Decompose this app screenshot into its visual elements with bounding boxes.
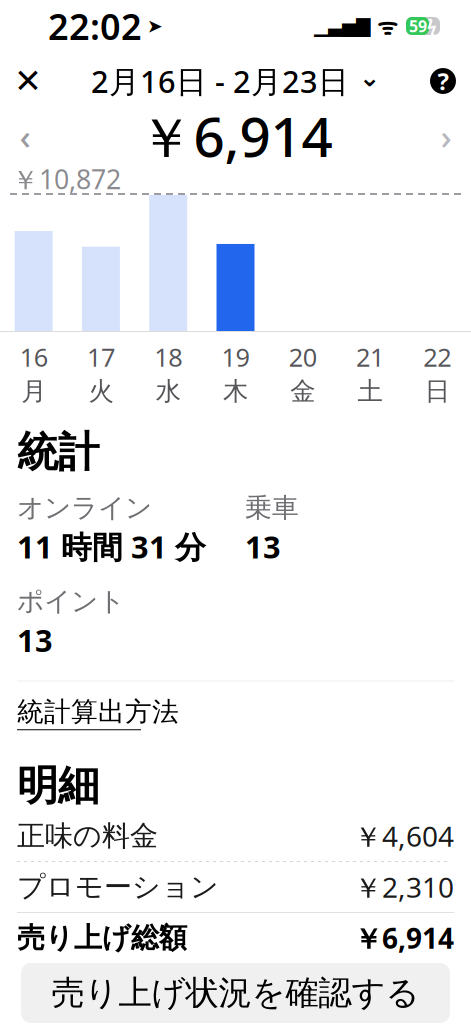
staticText: ポイント — [17, 585, 125, 618]
staticText: 統計算出方法 — [17, 695, 179, 728]
staticText: 21 — [356, 340, 384, 374]
staticText: ⌄ — [359, 63, 380, 92]
staticText: ᯤ — [377, 11, 398, 41]
staticText: 正味の料金 — [17, 819, 158, 853]
staticText: ϟ — [427, 14, 437, 37]
staticText: 日 — [425, 376, 450, 407]
staticText: 明細 — [17, 760, 99, 811]
button[interactable]: 統計算出方法 — [17, 681, 179, 730]
staticText: 22 — [423, 340, 451, 374]
staticText: ? — [437, 65, 448, 97]
staticText: 売り上げ状況を確認する — [51, 972, 419, 1013]
staticText: 13 — [17, 620, 53, 660]
staticText: 統計 — [17, 427, 99, 478]
staticText: 13 — [245, 526, 281, 567]
staticText: ￥6,914 — [354, 919, 454, 957]
staticText: 11 時間 31 分 — [17, 526, 206, 567]
staticText: 水 — [156, 376, 181, 407]
staticText: 19 — [221, 340, 249, 374]
button[interactable]: 前の週 — [0, 108, 50, 164]
staticText: 売り上げ総額 — [17, 921, 187, 955]
staticText: 59 — [409, 15, 427, 37]
staticText: 22:02 — [48, 2, 142, 50]
button[interactable]: 次の週 — [421, 108, 471, 164]
staticText: ￥10,872 — [12, 161, 121, 197]
staticText: ✕ — [14, 62, 42, 100]
staticText: 16 — [20, 340, 48, 374]
staticText: オンライン — [17, 491, 152, 524]
staticText: 木 — [223, 376, 248, 407]
staticText: 乗車 — [245, 491, 299, 524]
button[interactable]: ヘルプ — [415, 56, 471, 106]
staticText: ￥6,914 — [138, 100, 332, 172]
staticText: プロモーション — [17, 870, 219, 904]
staticText: 火 — [88, 376, 113, 407]
staticText: ￥2,310 — [354, 868, 454, 906]
staticText: ‹ — [19, 113, 30, 159]
button[interactable]: 閉じる — [0, 56, 56, 106]
staticText: ▁▃▅▇ — [314, 15, 370, 37]
staticText: 月 — [21, 376, 46, 407]
button[interactable]: 売り上げ状況を確認する — [21, 963, 450, 1023]
staticText: 2月16日 - 2月23日 — [91, 61, 349, 101]
staticText: 17 — [87, 340, 115, 374]
staticText: ￥4,604 — [354, 817, 454, 855]
staticText: 金 — [290, 376, 315, 407]
button[interactable]: 2月16日 - 2月23日 — [91, 56, 380, 106]
staticText: 20 — [289, 340, 317, 374]
staticText: › — [440, 113, 451, 159]
staticText: ➤ — [147, 15, 163, 37]
staticText: 18 — [154, 340, 182, 374]
staticText: 土 — [358, 376, 383, 407]
